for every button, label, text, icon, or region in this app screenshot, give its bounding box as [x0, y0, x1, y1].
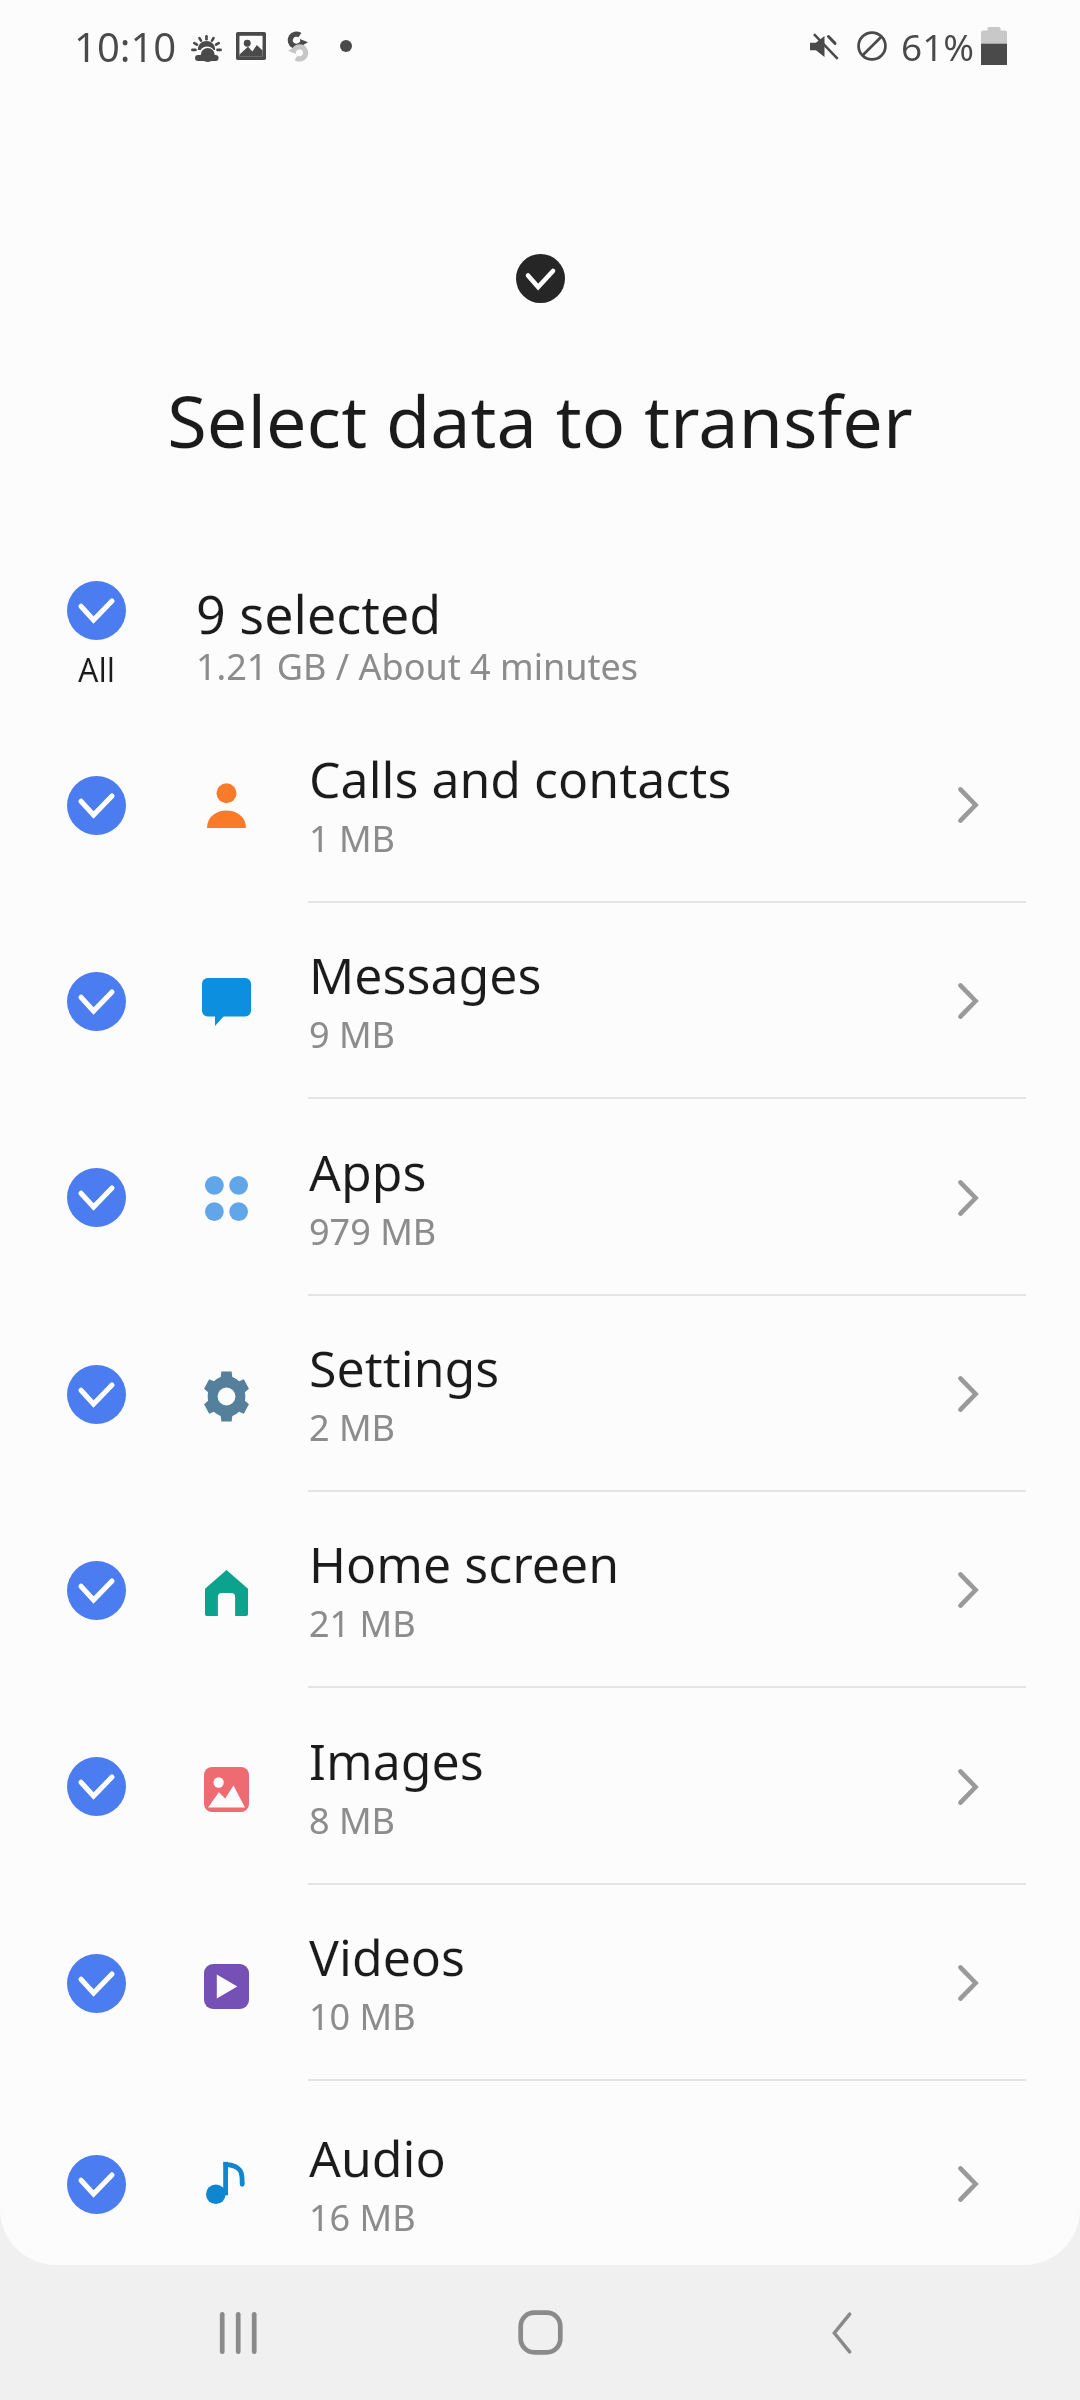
staticText: Messages	[309, 941, 542, 1009]
button[interactable]: Deselect Home screen	[0, 1492, 1080, 1688]
button[interactable]: Deselect Messages	[0, 903, 1080, 1099]
button[interactable]: Deselect Audio	[0, 2081, 1080, 2265]
staticText: 9 selected	[196, 578, 442, 649]
staticText: Apps	[309, 1138, 427, 1206]
staticText: All	[78, 648, 115, 692]
staticText: 21 MB	[309, 1599, 416, 1648]
button[interactable]: Deselect Calls and contacts	[67, 776, 126, 835]
button[interactable]: Deselect Audio	[67, 2155, 126, 2214]
button[interactable]: Open Audio	[946, 2144, 990, 2224]
staticText: Videos	[309, 1923, 466, 1991]
button[interactable]: Deselect Apps	[67, 1168, 126, 1227]
staticText: Select data to transfer	[0, 371, 1080, 469]
staticText: Home screen	[309, 1530, 620, 1598]
button[interactable]: Deselect Settings	[0, 1296, 1080, 1492]
staticText: Calls and contacts	[309, 745, 732, 813]
button[interactable]: Deselect Videos	[0, 1885, 1080, 2081]
button[interactable]: Home	[390, 2265, 690, 2400]
staticText: 16 MB	[309, 2193, 416, 2242]
staticText: Settings	[309, 1334, 500, 1402]
staticText: 2 MB	[309, 1403, 396, 1452]
button[interactable]: Deselect Images	[0, 1688, 1080, 1885]
button[interactable]: Open Calls and contacts	[946, 765, 990, 845]
button[interactable]: Deselect Apps	[0, 1099, 1080, 1296]
button[interactable]: Open Videos	[946, 1943, 990, 2023]
button[interactable]: Select all	[0, 581, 1080, 707]
button[interactable]: Open Images	[946, 1747, 990, 1827]
button[interactable]: Open Apps	[946, 1158, 990, 1238]
button[interactable]: Deselect Calls and contacts	[0, 707, 1080, 903]
button[interactable]: Deselect Settings	[67, 1365, 126, 1424]
button[interactable]: Deselect Messages	[67, 972, 126, 1031]
staticText: Images	[309, 1727, 484, 1795]
staticText: 8 MB	[309, 1796, 396, 1845]
staticText: Audio	[309, 2124, 446, 2192]
staticText: 9 MB	[309, 1010, 396, 1059]
button[interactable]: Deselect Home screen	[67, 1561, 126, 1620]
button[interactable]: Open Settings	[946, 1354, 990, 1434]
staticText: 979 MB	[309, 1207, 437, 1256]
staticText: 1 MB	[309, 814, 396, 863]
button[interactable]: Open Messages	[946, 961, 990, 1041]
button[interactable]: Deselect Images	[67, 1757, 126, 1816]
staticText: 10:10	[74, 19, 177, 73]
button[interactable]: Back	[690, 2265, 1080, 2400]
staticText: 10 MB	[309, 1992, 416, 2041]
button[interactable]: Open Home screen	[946, 1550, 990, 1630]
button[interactable]: Select all	[67, 581, 126, 692]
button[interactable]: Deselect Videos	[67, 1954, 126, 2013]
staticText: 1.21 GB / About 4 minutes	[196, 642, 638, 691]
button[interactable]: Recent apps	[0, 2265, 390, 2400]
staticText: 61%	[901, 21, 975, 71]
